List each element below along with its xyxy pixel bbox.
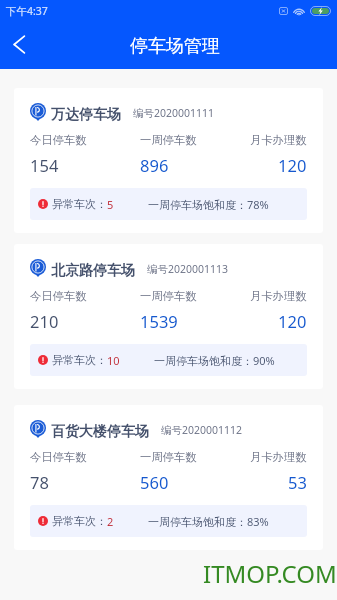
staticText: 月卡办理数	[250, 450, 307, 464]
button[interactable]: 北京路停车场	[14, 244, 323, 389]
staticText: ITMOP.COM	[203, 557, 337, 590]
staticText: 2	[107, 514, 114, 529]
staticText: 今日停车数	[30, 289, 87, 303]
staticText: 今日停车数	[30, 450, 87, 464]
staticText: 月卡办理数	[250, 289, 307, 303]
staticText: 编号2020001111	[133, 106, 215, 120]
staticText: 154	[30, 154, 59, 176]
staticText: 异常车次：	[52, 353, 107, 367]
staticText: 月卡办理数	[250, 133, 307, 147]
staticText: 210	[30, 310, 59, 332]
staticText: 一周停车数	[140, 133, 197, 147]
staticText: 896	[140, 154, 169, 176]
staticText: 一周停车数	[140, 450, 197, 464]
staticText: 5	[107, 197, 114, 212]
staticText: 一周停车场饱和度：90%	[154, 353, 275, 368]
staticText: 一周停车场饱和度：78%	[148, 197, 269, 212]
staticText: 百货大楼停车场	[51, 423, 149, 441]
staticText: 120	[278, 310, 307, 332]
button[interactable]: 万达停车场	[14, 88, 323, 233]
staticText: 120	[278, 154, 307, 176]
staticText: 异常车次：	[52, 197, 107, 211]
button[interactable]: 百货大楼停车场	[14, 405, 323, 550]
staticText: 停车场管理	[130, 35, 220, 58]
staticText: 万达停车场	[51, 106, 121, 124]
staticText: 10	[107, 353, 120, 368]
staticText: 53	[288, 471, 307, 493]
button[interactable]: Back	[0, 22, 46, 69]
staticText: 一周停车场饱和度：83%	[148, 514, 269, 529]
staticText: 1539	[140, 310, 178, 332]
staticText: 北京路停车场	[51, 262, 135, 280]
staticText: 编号2020001112	[161, 423, 243, 437]
staticText: 编号2020001113	[147, 262, 229, 276]
staticText: 一周停车数	[140, 289, 197, 303]
staticText: 异常车次：	[52, 514, 107, 528]
staticText: 今日停车数	[30, 133, 87, 147]
staticText: 下午4:37	[6, 4, 48, 18]
staticText: 560	[140, 471, 169, 493]
staticText: 78	[30, 471, 49, 493]
